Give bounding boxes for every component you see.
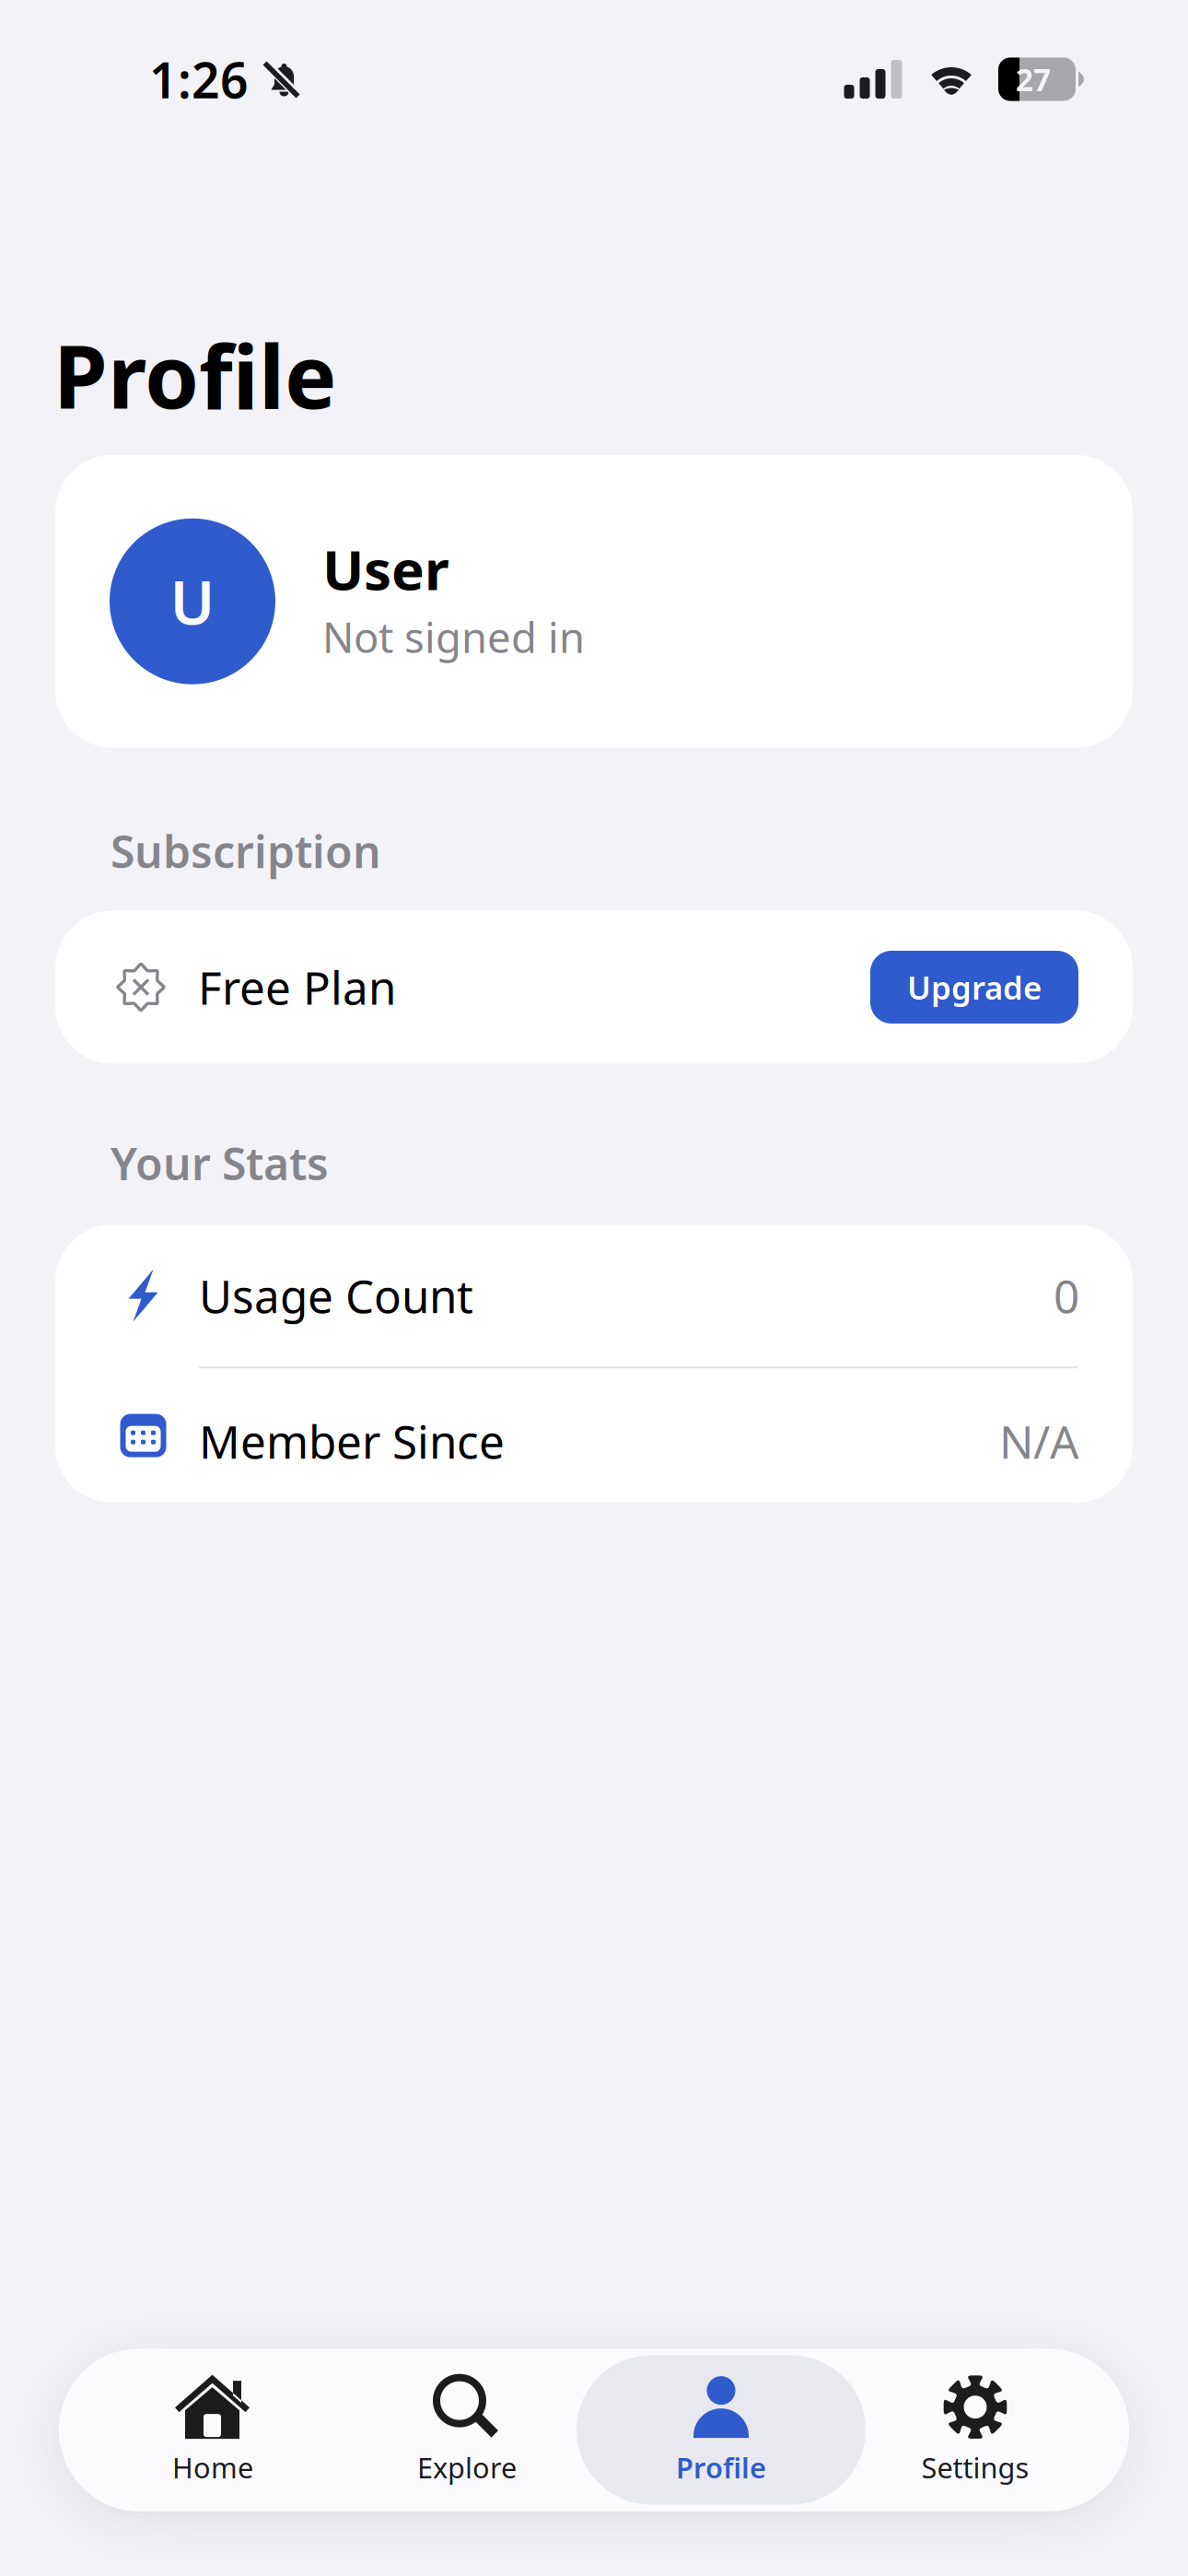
staticText: Your Stats xyxy=(111,1134,329,1192)
staticText: User xyxy=(322,532,449,605)
button[interactable]: Explore xyxy=(340,2348,594,2512)
button[interactable]: U xyxy=(55,455,1133,748)
button[interactable]: Home xyxy=(86,2348,340,2512)
staticText: 0 xyxy=(1054,1265,1079,1326)
staticText: Not signed in xyxy=(322,609,585,664)
staticText: Subscription xyxy=(111,822,381,880)
staticText: Explore xyxy=(417,2448,517,2486)
staticText: Free Plan xyxy=(198,957,396,1017)
staticText: U xyxy=(170,561,215,641)
staticText: Upgrade xyxy=(907,966,1042,1008)
staticText: 27 xyxy=(1016,59,1051,100)
button[interactable]: Upgrade xyxy=(870,951,1078,1024)
staticText: N/A xyxy=(999,1411,1079,1471)
staticText: Settings xyxy=(921,2448,1029,2486)
staticText: Profile xyxy=(53,317,337,433)
staticText: 1:26 xyxy=(149,47,249,112)
staticText: Profile xyxy=(676,2448,766,2486)
staticText: Usage Count xyxy=(199,1265,473,1326)
button[interactable]: Settings xyxy=(848,2348,1102,2512)
staticText: Member Since xyxy=(199,1411,505,1471)
staticText: Home xyxy=(172,2448,253,2486)
button[interactable]: Profile xyxy=(594,2348,848,2512)
